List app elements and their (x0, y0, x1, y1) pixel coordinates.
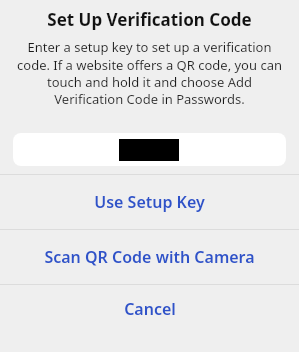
button[interactable] (13, 133, 286, 166)
staticText: Use Setup Key (94, 191, 205, 213)
staticText: Cancel (124, 298, 176, 320)
button[interactable]: Scan QR Code with Camera (0, 230, 299, 284)
staticText: Set Up Verification Code (47, 8, 252, 31)
staticText: Scan QR Code with Camera (44, 246, 255, 268)
button[interactable]: Use Setup Key (0, 175, 299, 229)
button[interactable]: Cancel (0, 285, 299, 332)
staticText: Enter a setup key to set up a verificati… (15, 38, 284, 108)
